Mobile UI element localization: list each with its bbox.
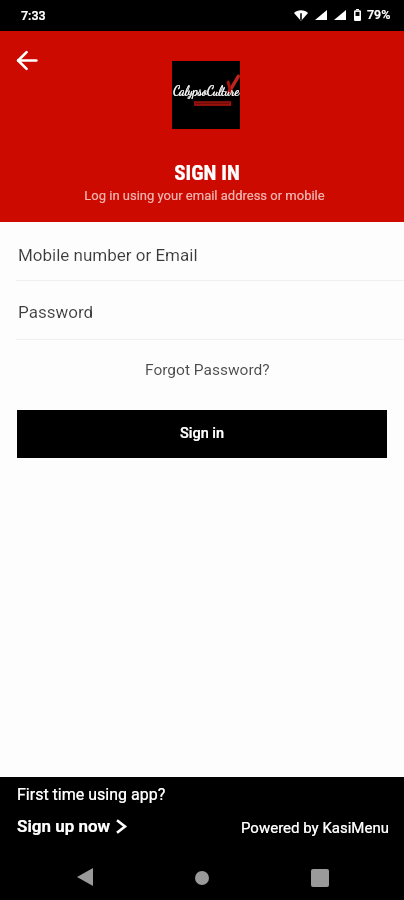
staticText: Mobile number or Email [18,245,198,265]
staticText: SIGN IN [174,161,240,186]
button[interactable]: Home [183,859,221,897]
button[interactable]: Recent apps [301,859,339,897]
button[interactable]: Back [66,858,104,896]
button[interactable]: Sign up now [17,816,126,836]
staticText: Log in using your email address or mobil… [84,188,325,203]
button[interactable]: Back [9,42,45,78]
staticText: CalypsoCulture [173,83,240,98]
button[interactable]: Sign in [17,410,387,458]
button[interactable]: Password [0,281,404,340]
staticText: 7:33 [21,8,46,23]
button[interactable]: Mobile number or Email [0,222,404,281]
staticText: Forgot Password? [145,361,270,379]
staticText: 79% [367,7,391,22]
staticText: Password [18,302,94,322]
staticText: Powered by KasiMenu [241,819,389,837]
button[interactable]: Forgot Password? [0,353,404,387]
staticText: Sign up now [17,816,111,836]
staticText: First time using app? [17,785,166,804]
staticText: Sign in [180,425,225,442]
